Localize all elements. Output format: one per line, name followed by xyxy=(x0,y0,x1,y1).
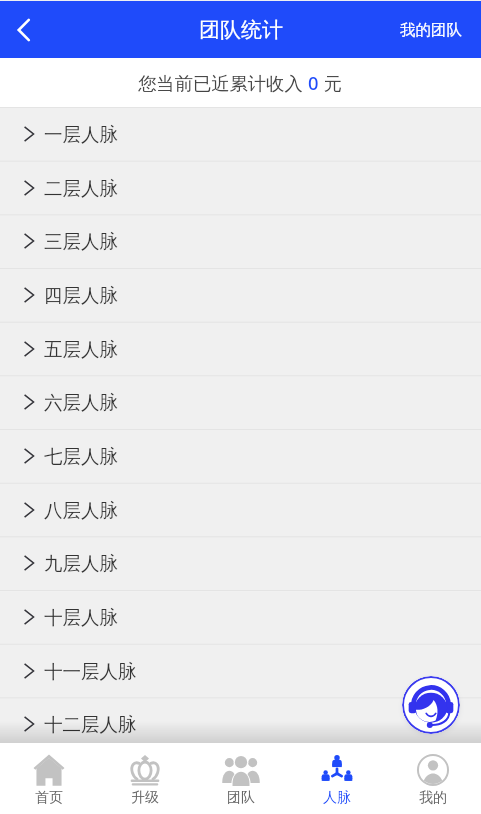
staticText: 一层人脉 xyxy=(44,123,118,146)
staticText: 0 xyxy=(308,70,319,95)
button[interactable]: 我的团队 xyxy=(381,1,481,58)
button[interactable]: Back xyxy=(0,6,48,54)
button[interactable]: 团队 xyxy=(193,743,289,814)
button[interactable]: Customer service xyxy=(402,676,460,734)
button[interactable]: 八层人脉 xyxy=(0,483,481,537)
button[interactable]: 我的 xyxy=(385,743,481,814)
button[interactable]: 四层人脉 xyxy=(0,268,481,322)
button[interactable]: 十层人脉 xyxy=(0,590,481,644)
staticText: 团队统计 xyxy=(199,17,283,43)
button[interactable]: 十一层人脉 xyxy=(0,644,481,698)
button[interactable]: 一层人脉 xyxy=(0,107,481,161)
button[interactable]: 六层人脉 xyxy=(0,375,481,429)
button[interactable]: 五层人脉 xyxy=(0,322,481,376)
button[interactable]: 十二层人脉 xyxy=(0,697,481,743)
staticText: 您当前已近累计收入 xyxy=(138,70,308,95)
staticText: 我的 xyxy=(419,789,447,807)
staticText: 十二层人脉 xyxy=(44,713,137,736)
staticText: 二层人脉 xyxy=(44,177,118,200)
button[interactable]: 二层人脉 xyxy=(0,161,481,215)
button[interactable]: 首页 xyxy=(0,743,97,814)
staticText: 升级 xyxy=(131,789,159,807)
staticText: 我的团队 xyxy=(400,20,462,40)
button[interactable]: 三层人脉 xyxy=(0,214,481,268)
staticText: 十一层人脉 xyxy=(44,660,137,683)
staticText: 七层人脉 xyxy=(44,445,118,468)
button[interactable]: 七层人脉 xyxy=(0,429,481,483)
staticText: 六层人脉 xyxy=(44,391,118,414)
staticText: 五层人脉 xyxy=(44,338,118,361)
staticText: 九层人脉 xyxy=(44,552,118,575)
staticText: 八层人脉 xyxy=(44,499,118,522)
button[interactable]: 人脉 xyxy=(289,743,385,814)
staticText: 三层人脉 xyxy=(44,230,118,253)
staticText: 首页 xyxy=(35,789,63,807)
staticText: 十层人脉 xyxy=(44,606,118,629)
button[interactable]: 升级 xyxy=(97,743,193,814)
staticText: 人脉 xyxy=(323,789,351,807)
button[interactable]: 九层人脉 xyxy=(0,536,481,590)
staticText: 团队 xyxy=(227,789,255,807)
staticText: 元 xyxy=(319,70,343,95)
staticText: 四层人脉 xyxy=(44,284,118,307)
